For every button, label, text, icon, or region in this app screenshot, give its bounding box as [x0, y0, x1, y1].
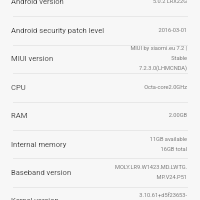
staticText: 2016-03-01 [158, 27, 187, 34]
staticText: MIUI by xiaomi.eu 7.2 | Stable 7.2.3.0(L… [130, 45, 187, 71]
staticText: Android version [11, 0, 64, 6]
staticText: MOLY.LR9.W1423.MD.LWTG. MP.V24.P51 [115, 164, 187, 180]
staticText: 5.0.2 LRX22G [152, 0, 187, 5]
staticText: RAM [11, 111, 28, 120]
staticText: 3.10.61+d5f23653- dirty [139, 192, 187, 200]
staticText: Internal memory [11, 140, 67, 149]
button[interactable]: Android version [0, 0, 200, 17]
staticText: Android security patch level [11, 26, 105, 35]
button[interactable]: Baseband version [0, 159, 200, 187]
staticText: CPU [11, 83, 26, 92]
button[interactable]: MIUI version [0, 45, 200, 73]
button[interactable]: Kernel version [0, 187, 200, 200]
button[interactable]: Android security patch level [0, 17, 200, 45]
button[interactable]: RAM [0, 102, 200, 130]
staticText: Baseband version [11, 168, 72, 177]
staticText: Kernel version [11, 196, 59, 200]
staticText: 11GB available 16GB total [149, 136, 187, 152]
staticText: MIUI version [11, 54, 54, 63]
staticText: 2.00GB [168, 112, 187, 119]
button[interactable]: CPU [0, 74, 200, 102]
button[interactable]: Internal memory [0, 131, 200, 159]
staticText: Octa-core2.0GHz [144, 84, 187, 91]
